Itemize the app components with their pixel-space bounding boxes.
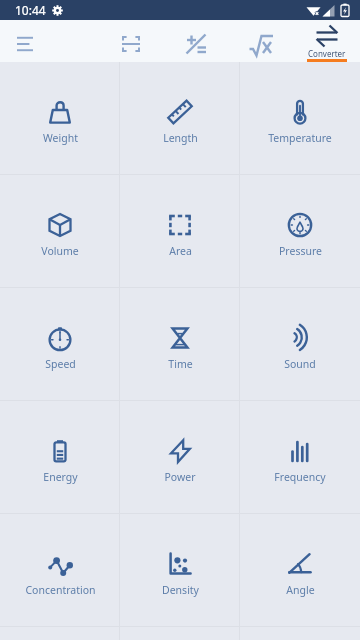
button[interactable]: Weight: [0, 62, 120, 174]
staticText: Concentration: [25, 583, 96, 597]
staticText: Time: [168, 357, 193, 371]
button[interactable]: Energy: [0, 401, 120, 513]
button[interactable]: Density: [120, 514, 240, 626]
button[interactable]: Power: [120, 401, 240, 513]
staticText: Power: [164, 470, 196, 484]
button[interactable]: Speed: [0, 288, 120, 400]
staticText: Converter: [308, 48, 346, 59]
staticText: Energy: [43, 470, 78, 484]
button[interactable]: Frequency: [240, 401, 360, 513]
button[interactable]: Scan: [105, 25, 157, 62]
staticText: Density: [162, 583, 199, 597]
button[interactable]: Converter: [294, 20, 360, 62]
button[interactable]: Length: [120, 62, 240, 174]
staticText: Frequency: [274, 470, 326, 484]
staticText: Pressure: [279, 244, 322, 258]
staticText: Length: [163, 131, 198, 145]
button[interactable]: Temperature: [240, 62, 360, 174]
button[interactable]: Angle: [240, 514, 360, 626]
staticText: Sound: [284, 357, 316, 371]
button[interactable]: Calculator: [170, 25, 222, 62]
staticText: Area: [169, 244, 192, 258]
button[interactable]: Time: [120, 288, 240, 400]
staticText: Temperature: [268, 131, 332, 145]
staticText: Speed: [45, 357, 76, 371]
button[interactable]: Sound: [240, 288, 360, 400]
button[interactable]: Menu: [0, 25, 52, 62]
button[interactable]: Volume: [0, 175, 120, 287]
staticText: Angle: [286, 583, 315, 597]
staticText: Weight: [43, 131, 78, 145]
button[interactable]: Root: [235, 25, 287, 62]
staticText: Volume: [41, 244, 79, 258]
staticText: 10:44: [15, 2, 46, 18]
button[interactable]: Area: [120, 175, 240, 287]
button[interactable]: Pressure: [240, 175, 360, 287]
button[interactable]: Concentration: [0, 514, 120, 626]
